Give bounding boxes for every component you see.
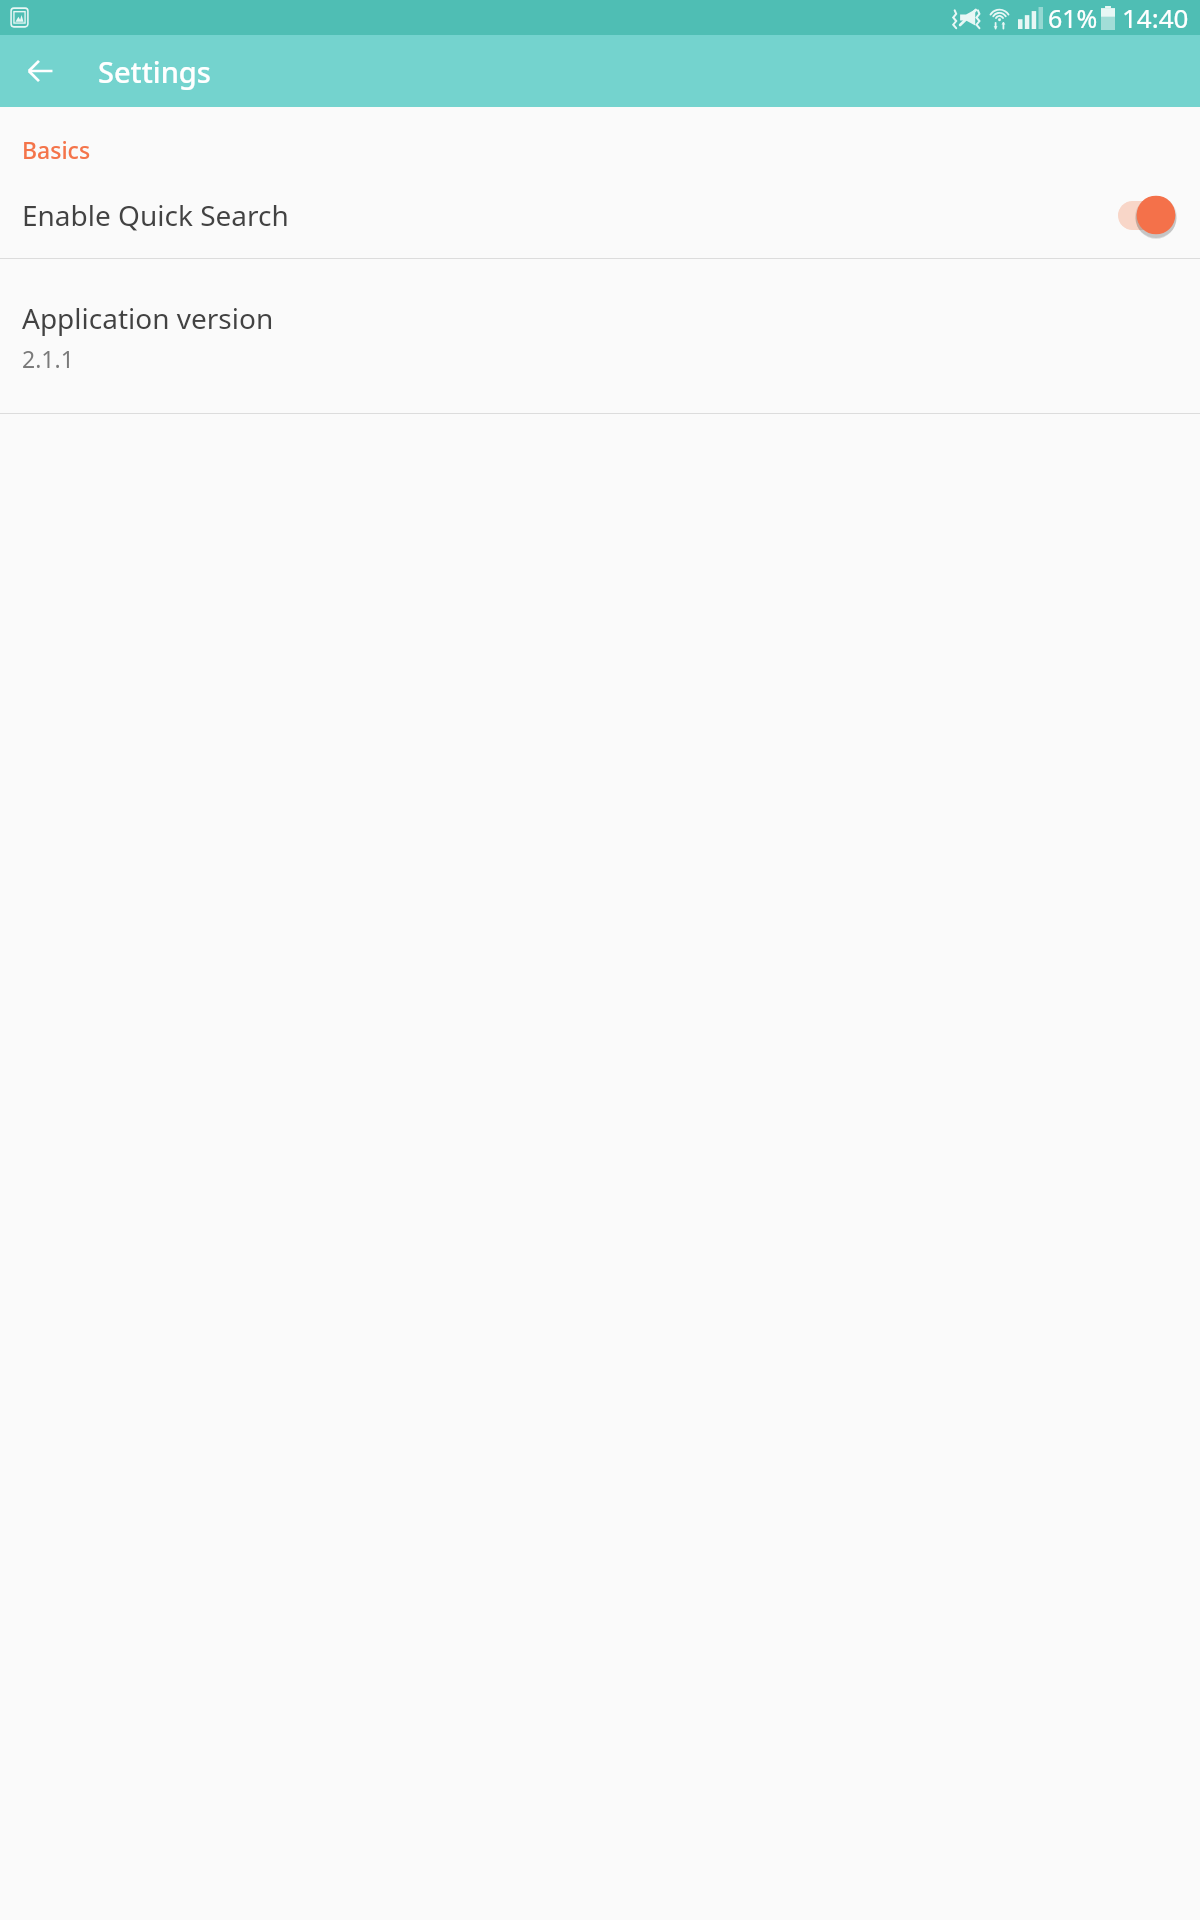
button[interactable]: Application version	[0, 259, 1200, 413]
staticText: Settings	[98, 52, 211, 91]
staticText: Application version	[22, 299, 274, 337]
staticText: 2.1.1	[22, 343, 74, 374]
staticText: 61%	[1048, 1, 1098, 35]
staticText: Basics	[22, 134, 91, 165]
staticText: 14:40	[1122, 0, 1189, 35]
button[interactable]: Back	[16, 47, 64, 95]
button[interactable]: Enable Quick Search	[0, 172, 1200, 258]
button[interactable]: Enable Quick Search toggle	[1116, 193, 1178, 237]
staticText: Enable Quick Search	[22, 196, 1116, 234]
